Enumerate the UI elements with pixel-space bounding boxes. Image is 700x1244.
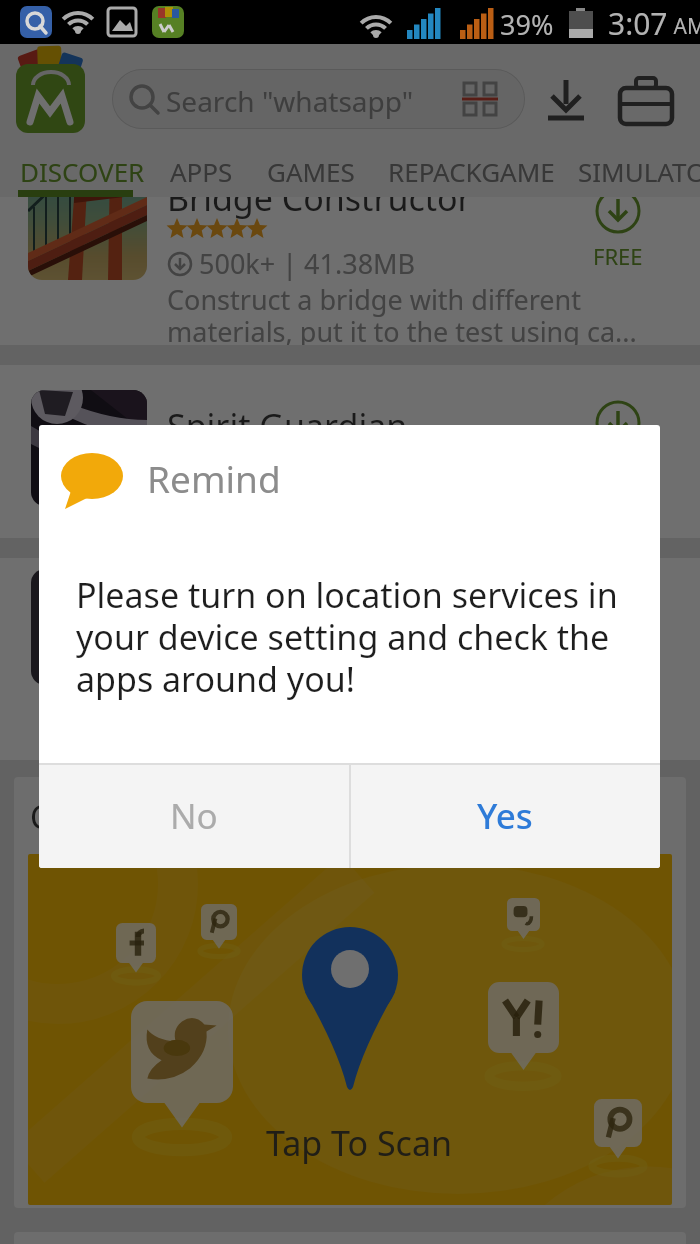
staticText: Construct a bridge with different materi… <box>167 281 637 350</box>
staticText: Search "whatsapp" <box>166 82 414 120</box>
button[interactable]: SIMULATOR <box>570 145 700 197</box>
button[interactable]: APPS <box>162 145 241 197</box>
staticText: APPS <box>170 154 233 189</box>
staticText: Remind <box>147 453 281 503</box>
staticText: Please turn on location services in your… <box>76 572 618 702</box>
staticText: GAMES <box>267 154 355 189</box>
button[interactable]: DISCOVER <box>12 145 153 197</box>
button[interactable]: Search "whatsapp" <box>112 69 525 129</box>
staticText: 39% <box>500 6 554 43</box>
staticText: 3:07 <box>608 3 668 44</box>
staticText: Spirit Guardian <box>167 403 408 449</box>
staticText: AM <box>668 12 700 41</box>
staticText: FREE <box>593 241 643 271</box>
button[interactable]: REPACKGAME <box>380 145 563 197</box>
button[interactable] <box>0 161 700 345</box>
staticText: REPACKGAME <box>388 154 555 189</box>
staticText: SIMULATOR <box>578 154 700 189</box>
staticText: No <box>170 792 218 840</box>
button[interactable]: FREE <box>592 397 644 483</box>
button[interactable] <box>612 72 682 128</box>
button[interactable]: No <box>39 763 349 868</box>
button[interactable] <box>538 74 594 126</box>
button[interactable]: GAMES <box>259 145 363 197</box>
staticText: Tap To Scan <box>266 1120 453 1166</box>
staticText: 500k+ | 41.38MB <box>199 245 416 282</box>
button[interactable]: Tap To Scan <box>28 854 672 1205</box>
button[interactable] <box>0 365 700 538</box>
staticText: Yes <box>477 792 533 840</box>
staticText: DISCOVER <box>20 154 145 189</box>
button[interactable]: Yes <box>350 763 660 868</box>
staticText: Bridge Constructor <box>167 175 472 221</box>
button[interactable]: FREE <box>592 185 644 271</box>
staticText: Collections <box>30 795 194 839</box>
